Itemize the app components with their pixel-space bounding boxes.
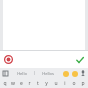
button[interactable]: o <box>69 79 78 87</box>
button[interactable]: q <box>1 79 9 87</box>
staticText: t <box>37 80 39 87</box>
button[interactable]: Emoji suggestion <box>70 69 79 78</box>
staticText: p <box>81 80 85 87</box>
button[interactable]: t <box>33 79 42 87</box>
button[interactable]: w <box>9 79 17 87</box>
staticText: w <box>11 80 15 87</box>
button[interactable]: u <box>51 79 60 87</box>
button[interactable]: i <box>60 79 69 87</box>
button[interactable]: r <box>25 79 33 87</box>
staticText: i <box>64 80 66 87</box>
button[interactable]: Voice input <box>79 69 87 77</box>
staticText: Hello <box>17 71 27 76</box>
button[interactable]: p <box>78 79 87 87</box>
button[interactable]: e <box>17 79 25 87</box>
button[interactable]: Hello <box>9 68 34 78</box>
staticText: r <box>28 80 31 87</box>
button[interactable]: Emoji suggestion <box>61 69 70 78</box>
button[interactable]: Hellos <box>35 68 61 78</box>
staticText: q <box>3 80 7 87</box>
button[interactable]: Done <box>73 53 86 66</box>
button[interactable]: y <box>42 79 51 87</box>
button[interactable]: Keyboard settings <box>1 69 9 77</box>
staticText: y <box>45 80 48 87</box>
staticText: o <box>72 80 76 87</box>
button[interactable]: Cancel <box>2 53 15 66</box>
staticText: Hellos <box>42 71 54 76</box>
staticText: e <box>20 80 23 87</box>
staticText: u <box>54 80 58 87</box>
